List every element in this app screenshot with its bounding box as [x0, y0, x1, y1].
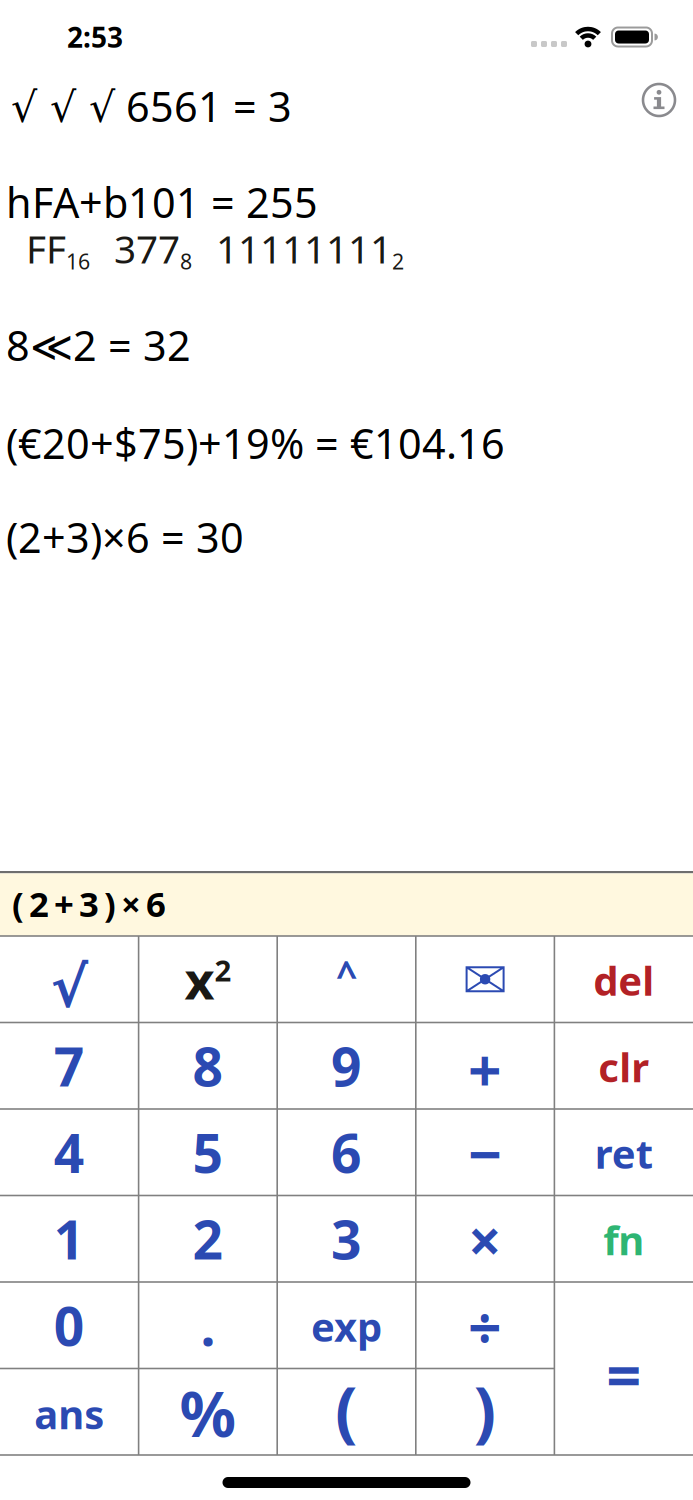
button[interactable]: x2	[140, 937, 276, 1021]
button[interactable]: 5	[140, 1110, 276, 1194]
staticText: (2+3)×6 = 30	[6, 510, 244, 564]
staticText: +	[468, 1031, 502, 1109]
staticText: 4	[54, 1117, 85, 1188]
staticText: (2+3)×6	[12, 880, 166, 926]
staticText: )	[474, 1365, 497, 1454]
staticText: clr	[598, 1040, 649, 1093]
staticText: 1	[54, 1203, 85, 1274]
button[interactable]: −	[417, 1110, 553, 1194]
button[interactable]: 7	[1, 1023, 138, 1108]
button[interactable]: 2	[140, 1196, 276, 1281]
button[interactable]: fn	[555, 1196, 692, 1281]
staticText: del	[593, 954, 654, 1007]
staticText: √ √ √ 6561 = 3	[11, 79, 292, 133]
staticText: x2	[184, 945, 231, 1014]
staticText: −	[468, 1114, 502, 1192]
staticText: 8	[192, 1030, 223, 1101]
button[interactable]: +	[417, 1023, 553, 1108]
button[interactable]: 0	[1, 1283, 138, 1367]
staticText: fn	[603, 1213, 644, 1266]
button[interactable]: ans	[1, 1369, 138, 1454]
button[interactable]: (2+3)×6	[0, 871, 693, 936]
staticText: 2	[192, 1203, 223, 1274]
button[interactable]: 3	[278, 1196, 415, 1281]
staticText: ^	[336, 949, 357, 999]
button[interactable]: 6	[278, 1110, 415, 1194]
staticText: %	[179, 1371, 236, 1454]
staticText: hFA+b101 = 255	[6, 175, 318, 229]
staticText: 8≪2 = 32	[6, 318, 191, 372]
staticText: (	[335, 1365, 358, 1454]
staticText: 0	[54, 1290, 85, 1361]
button[interactable]	[466, 966, 505, 992]
staticText: 7	[54, 1030, 85, 1101]
staticText: =	[606, 1333, 641, 1414]
button[interactable]: .	[140, 1283, 276, 1367]
staticText: ×	[468, 1201, 502, 1279]
button[interactable]: 1	[1, 1196, 138, 1281]
button[interactable]: clr	[555, 1023, 692, 1108]
button[interactable]: ret	[555, 1110, 692, 1194]
button[interactable]: )	[417, 1369, 553, 1454]
button[interactable]: 8	[140, 1023, 276, 1108]
button[interactable]: ÷	[417, 1283, 553, 1367]
button[interactable]: √	[1, 937, 138, 1021]
staticText: 5	[192, 1117, 223, 1188]
button[interactable]	[641, 82, 676, 117]
button[interactable]: ^	[278, 937, 415, 1021]
button[interactable]: del	[555, 937, 692, 1021]
button[interactable]: 9	[278, 1023, 415, 1108]
staticText: (€20+$75)+19% = €104.16	[6, 416, 505, 470]
staticText: 6	[331, 1117, 362, 1188]
button[interactable]: %	[140, 1369, 276, 1454]
staticText: ret	[595, 1127, 653, 1180]
staticText: ans	[34, 1387, 104, 1440]
staticText: 2:53	[67, 18, 123, 56]
button[interactable]: 4	[1, 1110, 138, 1194]
staticText: ÷	[468, 1287, 502, 1365]
button[interactable]: exp	[278, 1283, 415, 1367]
staticText: exp	[311, 1300, 382, 1353]
staticText: 9	[331, 1030, 362, 1101]
staticText: 3778	[114, 223, 192, 275]
staticText: 3	[331, 1203, 362, 1274]
button[interactable]: (	[278, 1369, 415, 1454]
button[interactable]: =	[555, 1283, 692, 1454]
staticText: FF16	[26, 223, 90, 275]
button[interactable]: ×	[417, 1196, 553, 1281]
staticText: 111111112	[216, 223, 404, 275]
staticText: .	[200, 1290, 215, 1361]
staticText: √	[51, 955, 88, 1019]
